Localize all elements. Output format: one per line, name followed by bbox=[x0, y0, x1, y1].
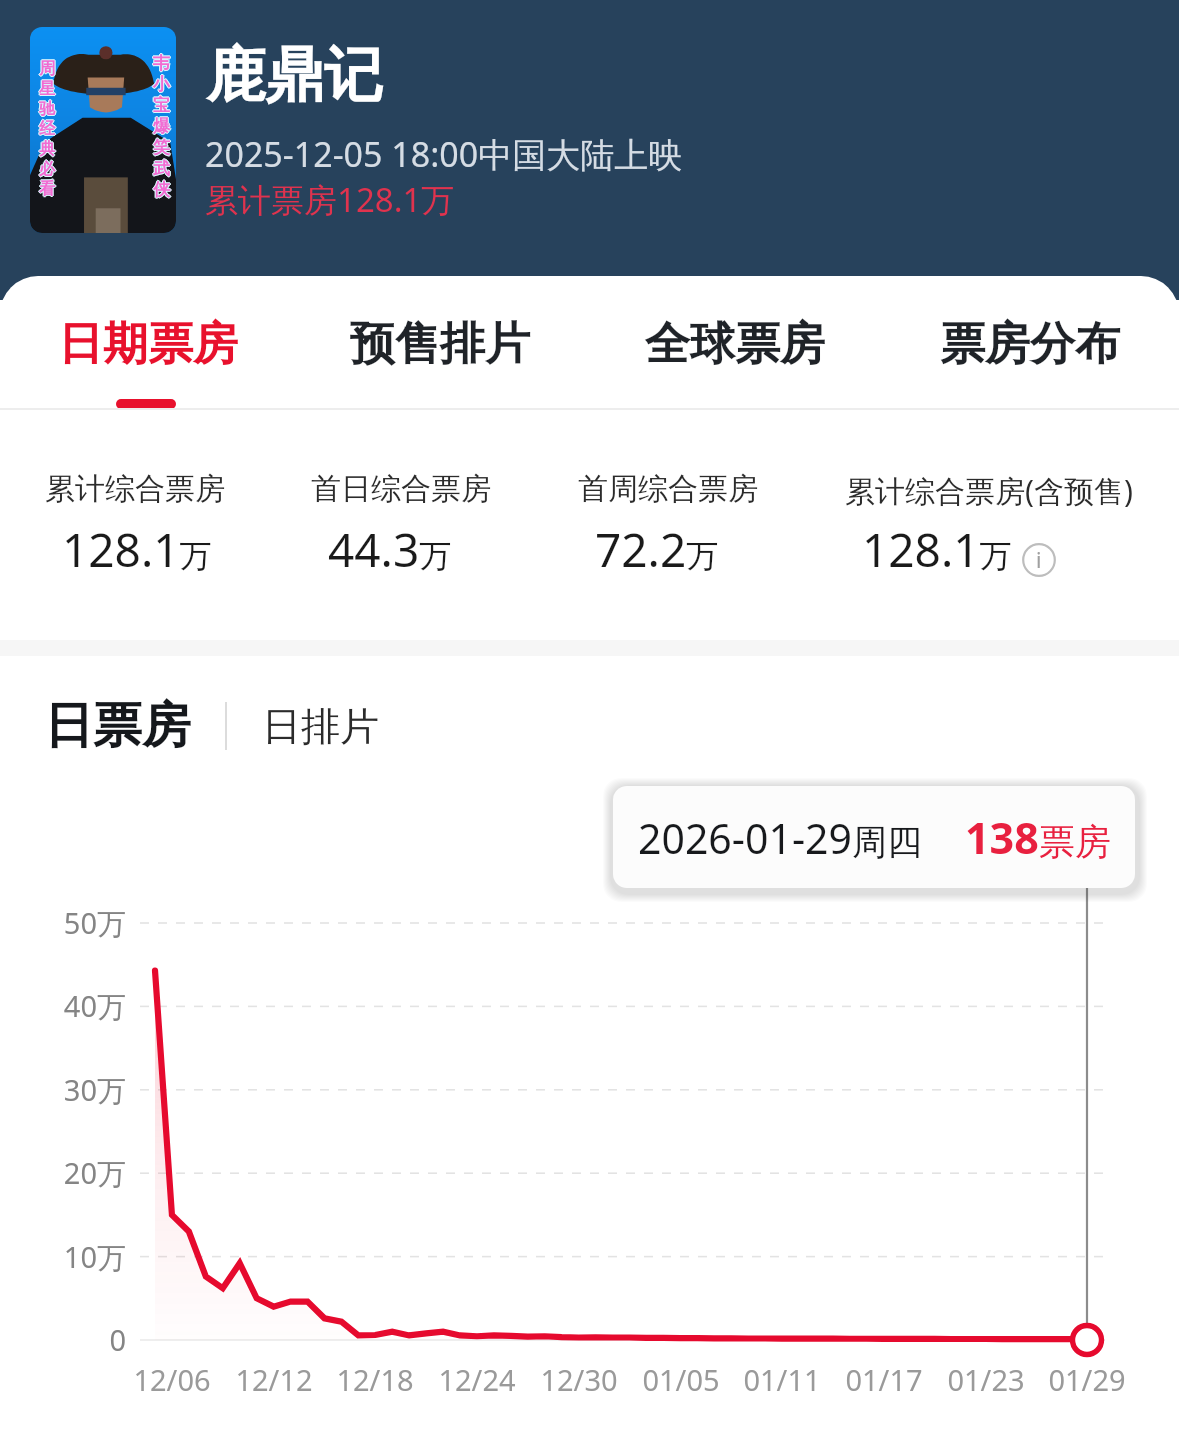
staticText: 必 bbox=[40, 159, 56, 179]
staticText: 01/11 bbox=[712, 1360, 852, 1399]
staticText: 韦 bbox=[153, 53, 170, 74]
staticText: 星 bbox=[38, 79, 54, 99]
staticText: 20万 bbox=[0, 1153, 126, 1193]
staticText: 宝 bbox=[153, 96, 170, 117]
staticText: 日排片 bbox=[262, 702, 379, 751]
staticText: 宝 bbox=[153, 95, 170, 116]
button[interactable]: 票房分布 bbox=[925, 296, 1135, 396]
staticText: 典 bbox=[39, 139, 55, 159]
button[interactable]: 电影海报 bbox=[30, 27, 176, 233]
staticText: 武 bbox=[154, 158, 171, 179]
staticText: 典 bbox=[39, 138, 55, 158]
staticText: 小 bbox=[152, 74, 169, 95]
staticText: 138票房 bbox=[965, 808, 1111, 867]
staticText: 星 bbox=[40, 79, 56, 99]
staticText: 12/30 bbox=[509, 1360, 649, 1399]
staticText: 必 bbox=[38, 159, 54, 179]
staticText: 日票房 bbox=[44, 695, 191, 757]
staticText: 128.1万 bbox=[62, 518, 212, 581]
button[interactable]: 全球票房 bbox=[630, 296, 840, 396]
staticText: 周 bbox=[40, 59, 56, 79]
staticText: 看 bbox=[39, 178, 55, 198]
staticText: 星 bbox=[39, 79, 55, 99]
staticText: 40万 bbox=[0, 986, 126, 1026]
staticText: 首日综合票房 bbox=[311, 470, 491, 508]
staticText: 小 bbox=[153, 75, 170, 96]
button[interactable]: 预售排片 bbox=[335, 296, 545, 396]
staticText: 笑 bbox=[154, 137, 171, 158]
button[interactable]: 日票房 bbox=[44, 678, 191, 774]
staticText: 01/23 bbox=[916, 1360, 1056, 1399]
staticText: 小 bbox=[154, 74, 171, 95]
staticText: 武 bbox=[153, 158, 170, 179]
staticText: 累计综合票房(含预售) bbox=[845, 470, 1133, 511]
staticText: 累计综合票房 bbox=[45, 470, 225, 508]
staticText: 驰 bbox=[38, 99, 54, 119]
staticText: 侠 bbox=[153, 178, 170, 199]
staticText: 驰 bbox=[40, 99, 56, 119]
staticText: 鹿鼎记 bbox=[206, 38, 383, 112]
staticText: 星 bbox=[39, 78, 55, 98]
staticText: 宝 bbox=[152, 95, 169, 116]
staticText: 看 bbox=[39, 180, 55, 200]
staticText: 全球票房 bbox=[645, 316, 825, 373]
staticText: 经 bbox=[39, 119, 55, 139]
staticText: 宝 bbox=[153, 94, 170, 115]
staticText: 30万 bbox=[0, 1070, 126, 1110]
staticText: 日期票房 bbox=[58, 316, 238, 373]
staticText: 预售排片 bbox=[350, 316, 530, 373]
staticText: 笑 bbox=[152, 137, 169, 158]
staticText: 12/12 bbox=[204, 1360, 344, 1399]
staticText: i bbox=[1036, 546, 1042, 575]
staticText: 累计票房128.1万 bbox=[205, 177, 455, 222]
staticText: 驰 bbox=[39, 98, 55, 118]
staticText: 票房分布 bbox=[940, 316, 1120, 373]
staticText: 周 bbox=[39, 58, 55, 78]
staticText: 笑 bbox=[153, 137, 170, 158]
staticText: 小 bbox=[153, 73, 170, 94]
staticText: 必 bbox=[39, 160, 55, 180]
staticText: 韦 bbox=[152, 53, 169, 74]
staticText: 01/29 bbox=[1017, 1360, 1157, 1399]
staticText: 爆 bbox=[153, 117, 170, 138]
staticText: 0 bbox=[0, 1320, 126, 1359]
staticText: 武 bbox=[153, 159, 170, 180]
staticText: 典 bbox=[38, 139, 54, 159]
staticText: 看 bbox=[38, 179, 54, 199]
staticText: 小 bbox=[153, 74, 170, 95]
staticText: 侠 bbox=[153, 180, 170, 201]
staticText: 周 bbox=[39, 59, 55, 79]
staticText: 韦 bbox=[153, 54, 170, 75]
staticText: 首周综合票房 bbox=[578, 470, 758, 508]
staticText: 驰 bbox=[39, 100, 55, 120]
button[interactable]: 票房说明 bbox=[1022, 543, 1056, 577]
staticText: 12/18 bbox=[305, 1360, 445, 1399]
staticText: 爆 bbox=[153, 116, 170, 137]
staticText: 10万 bbox=[0, 1237, 126, 1277]
staticText: 经 bbox=[39, 118, 55, 138]
staticText: 2025-12-05 18:00中国大陆上映 bbox=[205, 131, 683, 177]
staticText: 44.3万 bbox=[328, 518, 452, 581]
button[interactable]: 日期票房 bbox=[43, 296, 253, 396]
staticText: 128.1万 bbox=[862, 518, 1012, 581]
staticText: 韦 bbox=[154, 53, 171, 74]
staticText: 侠 bbox=[154, 179, 171, 200]
staticText: 武 bbox=[152, 158, 169, 179]
staticText: 12/06 bbox=[102, 1360, 242, 1399]
staticText: 武 bbox=[153, 157, 170, 178]
staticText: 经 bbox=[38, 119, 54, 139]
staticText: 典 bbox=[39, 140, 55, 160]
staticText: 驰 bbox=[39, 99, 55, 119]
staticText: 星 bbox=[39, 80, 55, 100]
staticText: 典 bbox=[40, 139, 56, 159]
staticText: 12/24 bbox=[407, 1360, 547, 1399]
staticText: 看 bbox=[39, 179, 55, 199]
staticText: 宝 bbox=[154, 95, 171, 116]
staticText: 2026-01-29周四 bbox=[638, 810, 923, 866]
staticText: 侠 bbox=[153, 179, 170, 200]
button[interactable]: 日排片 bbox=[262, 682, 379, 771]
staticText: 侠 bbox=[152, 179, 169, 200]
staticText: 50万 bbox=[0, 903, 126, 943]
staticText: 爆 bbox=[154, 116, 171, 137]
staticText: 必 bbox=[39, 158, 55, 178]
